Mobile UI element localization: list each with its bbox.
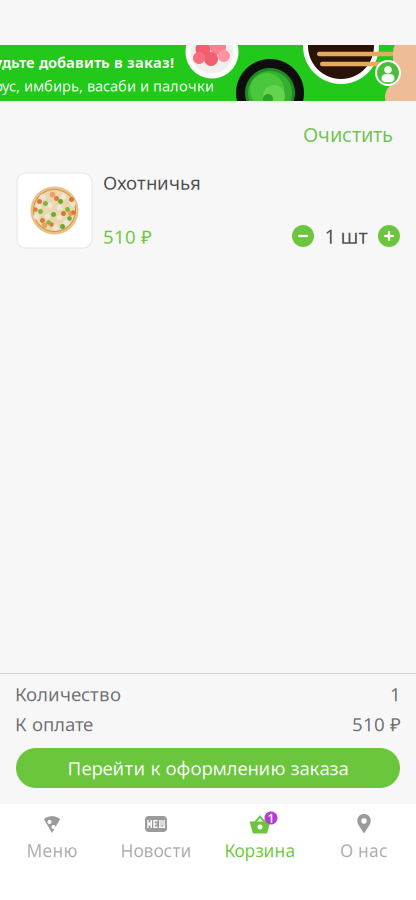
button[interactable]: Новости bbox=[104, 815, 208, 861]
staticText: Новости bbox=[120, 839, 191, 862]
staticText: 1 bbox=[267, 810, 274, 826]
staticText: Количество bbox=[15, 682, 121, 706]
staticText: 1 шт bbox=[324, 223, 367, 249]
staticText: Очистить bbox=[303, 121, 393, 148]
button[interactable]: Перейти к оформлению заказа bbox=[16, 748, 400, 788]
button[interactable]: Уменьшить количество bbox=[292, 225, 314, 247]
staticText: К оплате bbox=[15, 712, 93, 736]
staticText: 510 ₽ bbox=[352, 712, 401, 736]
staticText: Перейти к оформлению заказа bbox=[67, 756, 348, 780]
button[interactable]: Профиль bbox=[374, 59, 402, 87]
staticText: О нас bbox=[340, 839, 388, 862]
button[interactable]: Меню bbox=[0, 815, 104, 861]
staticText: Корзина bbox=[224, 839, 295, 862]
staticText: Охотничья bbox=[103, 170, 201, 195]
staticText: Меню bbox=[26, 839, 77, 862]
button[interactable]: Увеличить количество bbox=[378, 225, 400, 247]
staticText: 510 ₽ bbox=[103, 224, 152, 249]
button[interactable]: 1 bbox=[208, 815, 312, 861]
staticText: удьте добавить в заказ! bbox=[0, 52, 174, 72]
staticText: 1 bbox=[390, 682, 401, 706]
button[interactable]: О нас bbox=[312, 815, 416, 861]
staticText: рус, имбирь, васаби и палочки bbox=[0, 76, 214, 95]
button[interactable]: Очистить bbox=[295, 115, 401, 154]
